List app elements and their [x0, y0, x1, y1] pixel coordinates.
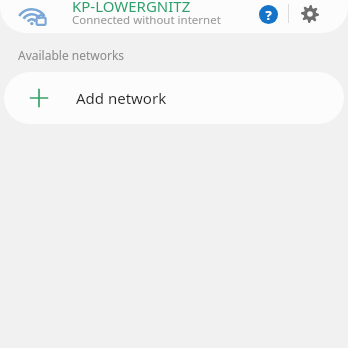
- staticText: Available networks: [18, 47, 125, 63]
- button[interactable]: Help: [254, 0, 282, 28]
- button[interactable]: Add network: [4, 72, 344, 124]
- button[interactable]: Secured Wi-Fi network: [0, 0, 348, 33]
- staticText: ?: [265, 6, 272, 24]
- staticText: Add network: [76, 88, 167, 108]
- staticText: Connected without internet: [72, 12, 221, 28]
- button[interactable]: Settings: [296, 0, 324, 28]
- staticText: KP-LOWERGNITZ: [72, 0, 191, 16]
- other: Secured Wi-Fi network: [18, 2, 48, 32]
